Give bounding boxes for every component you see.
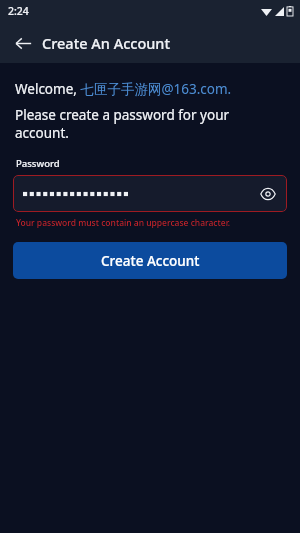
- button[interactable]: Show password: [13, 175, 287, 212]
- staticText: 2:24: [8, 4, 29, 18]
- button[interactable]: Show password: [255, 181, 281, 207]
- staticText: Your password must contain an uppercase …: [16, 217, 231, 229]
- staticText: Password: [16, 157, 60, 170]
- staticText: Create An Account: [42, 33, 171, 53]
- staticText: Please create a password for your accoun…: [15, 106, 285, 142]
- button[interactable]: Back: [8, 28, 38, 58]
- button[interactable]: Create Account: [13, 242, 287, 279]
- staticText: Create Account: [101, 252, 200, 270]
- staticText: Welcome, 七匣子手游网@163.com.: [15, 80, 232, 98]
